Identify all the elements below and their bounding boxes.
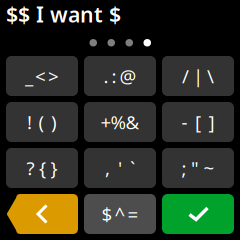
button[interactable]: .:@ (84, 56, 156, 96)
staticText: ,'` (105, 156, 135, 180)
staticText: !() (27, 110, 57, 134)
staticText: ;"~ (181, 156, 214, 180)
button[interactable]: ;"~ (162, 148, 234, 188)
button[interactable]: -[] (162, 102, 234, 142)
button[interactable]: +%& (84, 102, 156, 142)
button[interactable]: _<> (6, 56, 78, 96)
button[interactable]: ?{} (6, 148, 78, 188)
button[interactable]: ,'` (84, 148, 156, 188)
button[interactable]: $^= (84, 194, 156, 234)
staticText: ?{} (26, 156, 57, 180)
staticText: /|\ (182, 64, 214, 88)
staticText: -[] (181, 110, 214, 134)
staticText: $^= (101, 202, 138, 226)
button[interactable]: /|\ (162, 56, 234, 96)
staticText: $$ I want $ (6, 0, 121, 28)
staticText: _<> (25, 64, 59, 88)
button[interactable]: Delete (6, 194, 78, 234)
staticText: .:@ (103, 64, 136, 88)
button[interactable]: Confirm (162, 194, 234, 234)
staticText: +%& (100, 110, 139, 134)
button[interactable]: !() (6, 102, 78, 142)
